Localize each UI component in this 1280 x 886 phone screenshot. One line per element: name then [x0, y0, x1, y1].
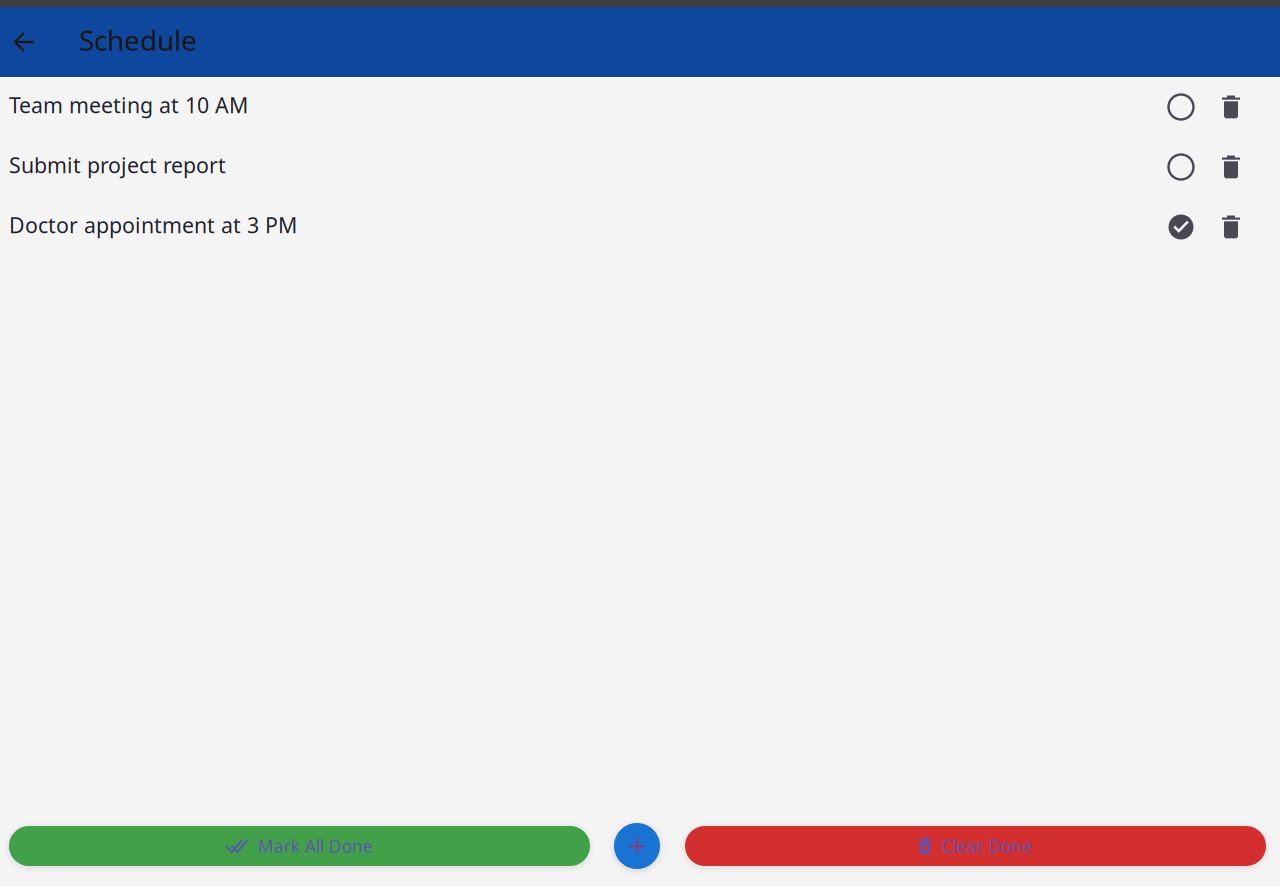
- button[interactable]: Clear Done: [685, 826, 1266, 866]
- staticText: Mark All Done: [258, 834, 373, 857]
- staticText: Doctor appointment at 3 PM: [9, 211, 297, 239]
- button[interactable]: Mark as done: [1156, 81, 1206, 137]
- button[interactable]: Mark as done: [1156, 141, 1206, 197]
- button[interactable]: Back: [0, 18, 48, 66]
- button[interactable]: Add task: [614, 823, 660, 869]
- staticText: Submit project report: [9, 151, 226, 179]
- button[interactable]: Delete task: [1206, 201, 1256, 257]
- staticText: Schedule: [79, 21, 197, 59]
- button[interactable]: Mark as not done: [1156, 201, 1206, 257]
- button[interactable]: Delete task: [1206, 81, 1256, 137]
- staticText: Clear Done: [941, 834, 1032, 857]
- staticText: Team meeting at 10 AM: [9, 91, 248, 119]
- button[interactable]: Mark All Done: [9, 826, 590, 866]
- button[interactable]: Delete task: [1206, 141, 1256, 197]
